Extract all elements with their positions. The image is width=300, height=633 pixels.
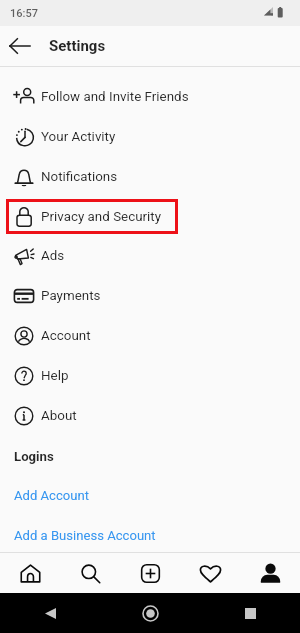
staticText: Payments xyxy=(41,288,101,304)
button[interactable]: Add a Business Account xyxy=(0,516,300,554)
button[interactable]: Home xyxy=(0,553,60,593)
staticText: Your Activity xyxy=(41,129,116,145)
staticText: Settings xyxy=(49,37,106,55)
button[interactable]: New post xyxy=(120,553,180,593)
button[interactable]: Account xyxy=(0,316,300,356)
button[interactable]: Payments xyxy=(0,276,300,316)
button[interactable]: Profile xyxy=(240,553,300,593)
staticText: About xyxy=(41,408,77,424)
button[interactable]: Activity xyxy=(180,553,240,593)
staticText: Follow and Invite Friends xyxy=(41,89,189,105)
staticText: Add Account xyxy=(14,488,90,503)
button[interactable]: Help xyxy=(0,356,300,396)
staticText: Add a Business Account xyxy=(14,528,156,543)
button[interactable]: Follow and Invite Friends xyxy=(0,77,300,117)
button[interactable]: Back xyxy=(0,26,40,66)
staticText: Logins xyxy=(14,449,54,464)
staticText: Notifications xyxy=(41,169,118,185)
button[interactable]: Privacy and Security xyxy=(0,197,300,237)
staticText: Privacy and Security xyxy=(41,209,162,225)
button[interactable]: Your Activity xyxy=(0,117,300,157)
staticText: Help xyxy=(41,368,69,384)
staticText: 16:57 xyxy=(10,7,38,20)
staticText: Account xyxy=(41,328,91,344)
button[interactable]: About xyxy=(0,396,300,436)
button[interactable]: Add Account xyxy=(0,476,300,514)
button[interactable]: Notifications xyxy=(0,157,300,197)
button[interactable]: Ads xyxy=(0,236,300,276)
staticText: Ads xyxy=(41,248,65,264)
button[interactable]: Search xyxy=(60,553,120,593)
